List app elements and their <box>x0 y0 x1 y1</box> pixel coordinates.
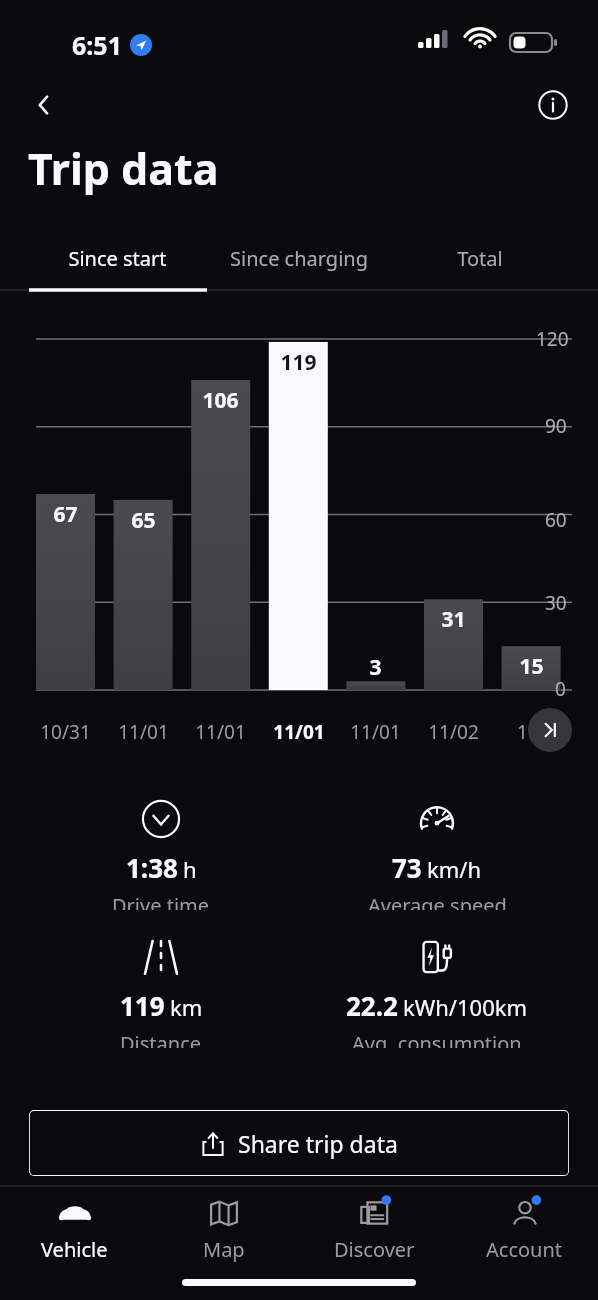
staticText: Average speed <box>368 892 507 910</box>
staticText: 6:51 <box>72 28 122 62</box>
staticText: 120 <box>536 326 569 352</box>
staticText: 11/ <box>517 719 546 745</box>
staticText: Since charging <box>230 245 368 272</box>
staticText: Map <box>203 1236 245 1263</box>
staticText: 0 <box>555 676 566 702</box>
staticText: 1:38 <box>126 850 178 885</box>
staticText: 3 <box>346 653 405 682</box>
staticText: 22.2 <box>346 988 398 1023</box>
button[interactable]: 11/ <box>494 715 569 749</box>
staticText: 10/31 <box>40 719 91 745</box>
button[interactable]: Back <box>20 82 68 128</box>
staticText: 60 <box>545 507 567 533</box>
staticText: 65 <box>114 506 173 535</box>
staticText: 30 <box>545 590 567 616</box>
staticText: km/h <box>427 854 482 884</box>
staticText: km <box>170 992 203 1022</box>
staticText: 106 <box>191 386 250 415</box>
staticText: 31 <box>424 605 483 634</box>
staticText: Total <box>457 245 503 272</box>
staticText: Vehicle <box>41 1236 108 1263</box>
staticText: Share trip data <box>238 1128 398 1159</box>
button[interactable]: Account <box>450 1186 598 1274</box>
button[interactable]: 73 <box>276 780 598 910</box>
staticText: 119 <box>120 988 165 1023</box>
staticText: 11/01 <box>195 719 246 745</box>
button[interactable]: Total <box>390 228 570 290</box>
button[interactable]: 11/01 <box>106 715 181 749</box>
staticText: 11/01 <box>118 719 169 745</box>
staticText: 73 <box>392 850 422 885</box>
button[interactable]: 119 <box>0 918 322 1048</box>
button[interactable]: Share trip data <box>29 1110 569 1176</box>
staticText: 11/01 <box>350 719 401 745</box>
staticText: Avg. consumption <box>352 1030 522 1048</box>
staticText: kWh/100km <box>403 992 528 1022</box>
button[interactable]: 1:38 <box>0 780 322 910</box>
staticText: Discover <box>334 1236 415 1263</box>
staticText: 11/02 <box>428 719 479 745</box>
staticText: 67 <box>36 500 95 529</box>
staticText: 11/01 <box>273 719 325 745</box>
staticText: 119 <box>269 348 328 377</box>
button[interactable]: 10/31 <box>28 715 103 749</box>
staticText: 90 <box>545 413 567 439</box>
button[interactable]: 11/01 <box>338 715 413 749</box>
staticText: Drive time <box>112 892 210 910</box>
button[interactable]: Since charging <box>209 228 389 290</box>
staticText: Trip data <box>28 139 219 198</box>
button[interactable]: Next <box>528 708 572 752</box>
button[interactable]: Discover <box>300 1186 448 1274</box>
staticText: Since start <box>68 245 167 272</box>
staticText: Account <box>486 1236 563 1263</box>
button[interactable]: 11/02 <box>416 715 491 749</box>
button[interactable]: Map <box>150 1186 298 1274</box>
staticText: h <box>183 854 197 884</box>
button[interactable]: 22.2 <box>276 918 598 1048</box>
button[interactable]: 11/01 <box>261 715 336 749</box>
button[interactable]: 11/01 <box>183 715 258 749</box>
button[interactable]: Since start <box>27 228 207 290</box>
staticText: 15 <box>502 652 561 681</box>
staticText: Distance <box>120 1030 202 1048</box>
button[interactable]: Vehicle <box>0 1186 148 1274</box>
button[interactable]: Info <box>530 82 576 128</box>
